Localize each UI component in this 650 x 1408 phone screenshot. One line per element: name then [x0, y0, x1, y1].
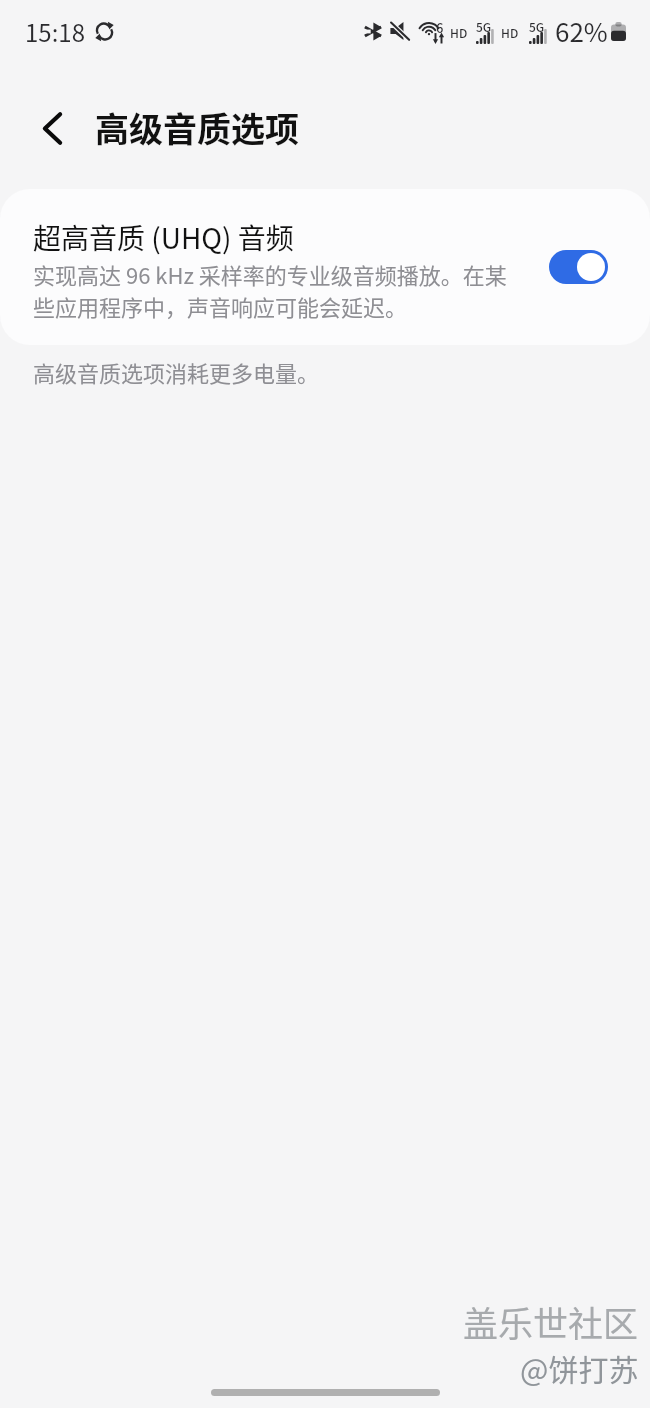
staticText: 6 — [436, 18, 444, 37]
staticText: 实现高达 96 kHz 采样率的专业级音频播放。在某些应用程序中，声音响应可能会… — [33, 258, 509, 323]
staticText: 5G — [529, 18, 545, 35]
staticText: 盖乐世社区 — [463, 1296, 639, 1347]
button[interactable]: Toggle UHQ audio — [549, 250, 608, 284]
staticText: 高级音质选项消耗更多电量。 — [33, 356, 320, 388]
staticText: 15:18 — [25, 14, 85, 49]
staticText: 高级音质选项 — [95, 103, 299, 152]
staticText: 62% — [555, 12, 608, 50]
button[interactable]: Back — [25, 101, 79, 155]
staticText: @饼打苏 — [520, 1346, 639, 1389]
button[interactable]: 超高音质 (UHQ) 音频 — [0, 189, 650, 345]
staticText: HD — [501, 24, 519, 41]
staticText: 5G — [476, 18, 492, 35]
staticText: 超高音质 (UHQ) 音频 — [33, 217, 294, 258]
staticText: HD — [450, 24, 468, 41]
